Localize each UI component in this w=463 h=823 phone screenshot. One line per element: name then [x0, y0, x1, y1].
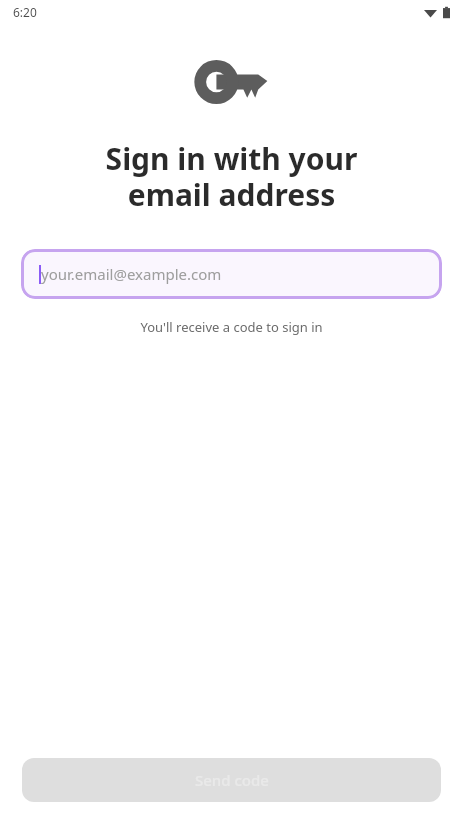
staticText: Sign in with your email address — [0, 138, 463, 215]
staticText: your.email@example.com — [41, 264, 222, 284]
staticText: Send code — [195, 770, 269, 790]
staticText: 6:20 — [13, 4, 37, 20]
staticText: You'll receive a code to sign in — [0, 318, 463, 336]
button[interactable]: your.email@example.com — [21, 249, 442, 299]
